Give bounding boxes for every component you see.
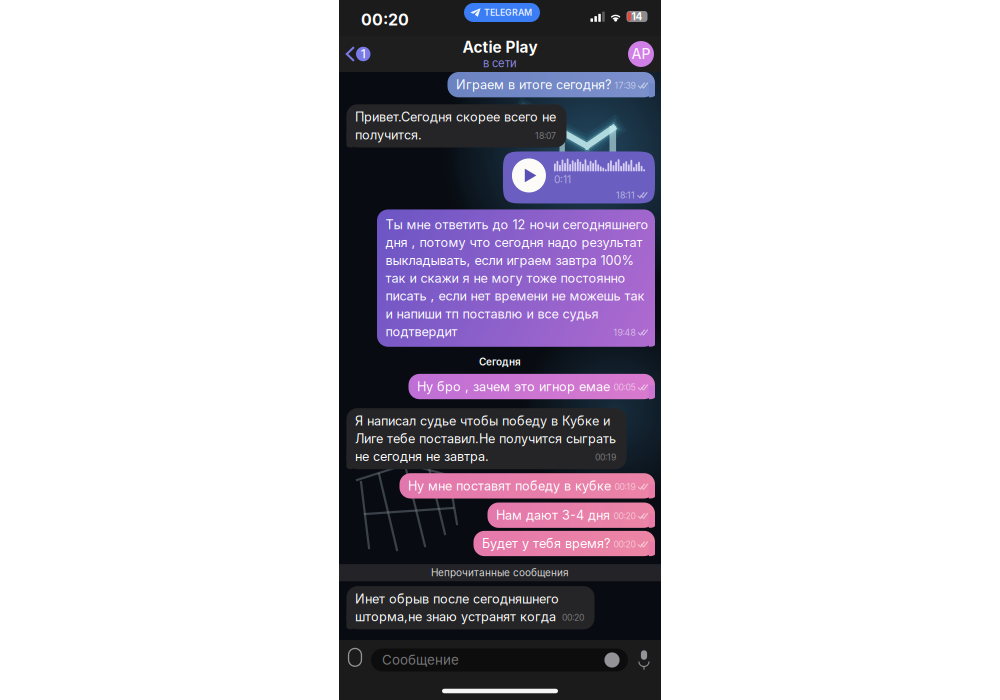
staticText: шторма,не знаю устранят когда <box>355 609 556 624</box>
button[interactable]: Я написал судье чтобы победу в Кубке и <box>346 408 626 469</box>
button[interactable]: Привет.Сегодня скорее всего не <box>346 104 566 147</box>
button[interactable]: Profile <box>628 41 654 67</box>
button[interactable]: Attach <box>340 641 371 679</box>
staticText: Играем в итоге сегодня? <box>456 77 611 92</box>
staticText: 00:20 <box>562 612 584 623</box>
staticText: Инет обрыв после сегодняшнего <box>355 591 559 606</box>
staticText: писать , если нет времени не можешь так <box>385 288 644 304</box>
staticText: Сегодня <box>479 356 521 368</box>
staticText: 00:19 <box>595 452 616 463</box>
staticText: 17:39 <box>614 80 635 91</box>
staticText: 00:19 <box>614 481 635 492</box>
button[interactable]: Play voice message <box>503 151 655 203</box>
button[interactable]: Играем в итоге сегодня? <box>447 72 655 97</box>
staticText: AP <box>631 45 650 62</box>
staticText: в сети <box>483 56 517 70</box>
staticText: 1 <box>361 47 366 61</box>
staticText: Я написал судье чтобы победу в Кубке и <box>355 413 610 428</box>
staticText: Будет у тебя время? <box>482 536 610 551</box>
staticText: Сообщение <box>382 652 459 668</box>
button[interactable]: Ты мне ответить до 12 ночи сегодняшнего <box>377 209 655 347</box>
staticText: 0:11 <box>554 173 571 186</box>
staticText: 00:20 <box>613 511 635 521</box>
staticText: 18:11 <box>616 190 635 200</box>
staticText: выкладывать, если играем завтра 100% <box>385 253 633 268</box>
staticText: Лиге тебе поставил.Не получится сыграть <box>355 431 616 446</box>
staticText: Ну бро , зачем это игнор емае <box>417 379 610 394</box>
button[interactable]: Ну бро , зачем это игнор емае <box>408 374 655 399</box>
staticText: 19:48 <box>613 327 635 338</box>
staticText: 18:07 <box>535 130 556 141</box>
staticText: Ты мне ответить до 12 ночи сегодняшнего <box>385 217 648 232</box>
staticText: 00:05 <box>613 382 635 393</box>
staticText: 00:20 <box>613 539 635 550</box>
staticText: 14 <box>631 10 642 23</box>
staticText: TELEGRAM <box>484 7 532 18</box>
staticText: получится. <box>355 127 422 142</box>
button[interactable]: Инет обрыв после сегодняшнего <box>346 586 594 629</box>
staticText: 00:20 <box>361 10 409 29</box>
button[interactable]: Сообщение <box>371 648 628 671</box>
staticText: Actie Play <box>462 38 537 56</box>
button[interactable]: Ну мне поставят победу в кубке <box>399 473 655 498</box>
staticText: дня , потому что сегодня надо результат <box>385 235 642 250</box>
staticText: Ну мне поставят победу в кубке <box>408 478 611 493</box>
button[interactable]: Будет у тебя время? <box>473 531 655 556</box>
staticText: Непрочитанные сообщения <box>431 567 569 579</box>
staticText: не сегодня не завтра. <box>355 449 489 464</box>
staticText: Привет.Сегодня скорее всего не <box>355 109 556 125</box>
button[interactable]: Back <box>339 36 391 72</box>
staticText: так и скажи я не могу тоже постоянно <box>385 270 625 286</box>
button[interactable]: Record voice message <box>628 641 660 679</box>
staticText: подтвердит <box>385 324 457 339</box>
button[interactable]: Нам дают 3-4 дня <box>487 502 655 528</box>
staticText: Нам дают 3-4 дня <box>496 507 610 523</box>
staticText: и напиши тп поставлю и все судья <box>385 306 598 321</box>
